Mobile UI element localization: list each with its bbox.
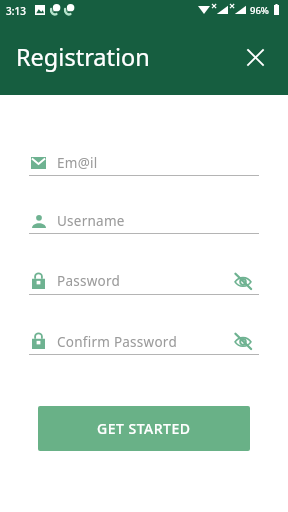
button[interactable]: Confirm Password bbox=[29, 326, 259, 355]
button[interactable]: GET STARTED bbox=[38, 406, 250, 451]
button[interactable]: Show password bbox=[231, 268, 255, 292]
staticText: GET STARTED bbox=[97, 419, 191, 438]
staticText: Registration bbox=[16, 41, 150, 73]
button[interactable]: Show password bbox=[231, 328, 255, 352]
button[interactable]: Username bbox=[29, 205, 259, 234]
staticText: 3:13 bbox=[6, 4, 26, 18]
button[interactable]: Close bbox=[239, 41, 272, 74]
button[interactable]: Password bbox=[29, 266, 259, 295]
staticText: 96% bbox=[250, 4, 269, 17]
button[interactable]: Em@il bbox=[29, 147, 259, 176]
staticText: Confirm Password bbox=[57, 333, 177, 351]
staticText: Password bbox=[57, 272, 121, 290]
staticText: Em@il bbox=[57, 154, 98, 172]
staticText: Username bbox=[57, 212, 125, 230]
